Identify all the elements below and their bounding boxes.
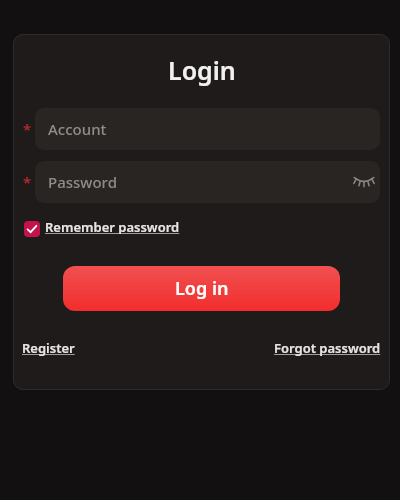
button[interactable]: Account [35, 108, 380, 150]
button[interactable]: Forgot password [274, 337, 381, 359]
staticText: Remember password [45, 218, 180, 234]
staticText: Login [168, 53, 236, 87]
staticText: Account [48, 119, 107, 139]
staticText: * [23, 119, 32, 139]
staticText: Register [22, 339, 75, 357]
button[interactable]: Log in [63, 266, 340, 311]
staticText: Password [48, 172, 117, 192]
button[interactable]: Password [35, 161, 380, 203]
staticText: Log in [175, 276, 229, 301]
staticText: Forgot password [274, 339, 381, 357]
button[interactable]: Register [22, 337, 75, 359]
button[interactable] [353, 174, 375, 190]
staticText: * [23, 172, 32, 192]
button[interactable]: Remember password [24, 221, 159, 237]
